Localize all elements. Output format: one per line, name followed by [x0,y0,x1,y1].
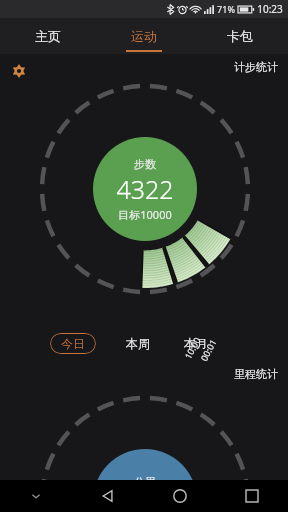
staticText: 里程统计 [234,367,278,381]
staticText: 公里 [134,475,156,489]
staticText: 步数 [134,157,156,171]
staticText: 10:00 [181,335,203,361]
staticText: 本月 [184,336,208,351]
button[interactable]: Hide [0,480,72,512]
staticText: 运动 [131,28,157,44]
staticText: 71% [217,3,235,15]
button[interactable]: 运动 [96,18,192,54]
staticText: 主页 [35,28,61,44]
button[interactable]: Settings [8,60,30,82]
button[interactable]: 步数 [93,137,197,241]
button[interactable]: 主页 [0,18,96,54]
button[interactable]: Back [72,480,144,512]
staticText: 4322 [116,172,174,206]
button[interactable]: 今日 [50,333,96,354]
staticText: 目标10000 [118,207,172,222]
button[interactable]: 卡包 [192,18,288,54]
staticText: 今日 [61,336,85,351]
button[interactable]: Home [144,480,216,512]
button[interactable]: 公里 [93,449,197,512]
button[interactable]: 本周 [122,332,154,355]
button[interactable]: Recents [216,480,288,512]
staticText: 10:23 [257,2,283,16]
staticText: 计步统计 [234,60,278,74]
staticText: 卡包 [227,28,253,44]
button[interactable]: 本月 [180,332,212,355]
staticText: 00:01 [197,337,219,363]
staticText: 本周 [126,336,150,351]
